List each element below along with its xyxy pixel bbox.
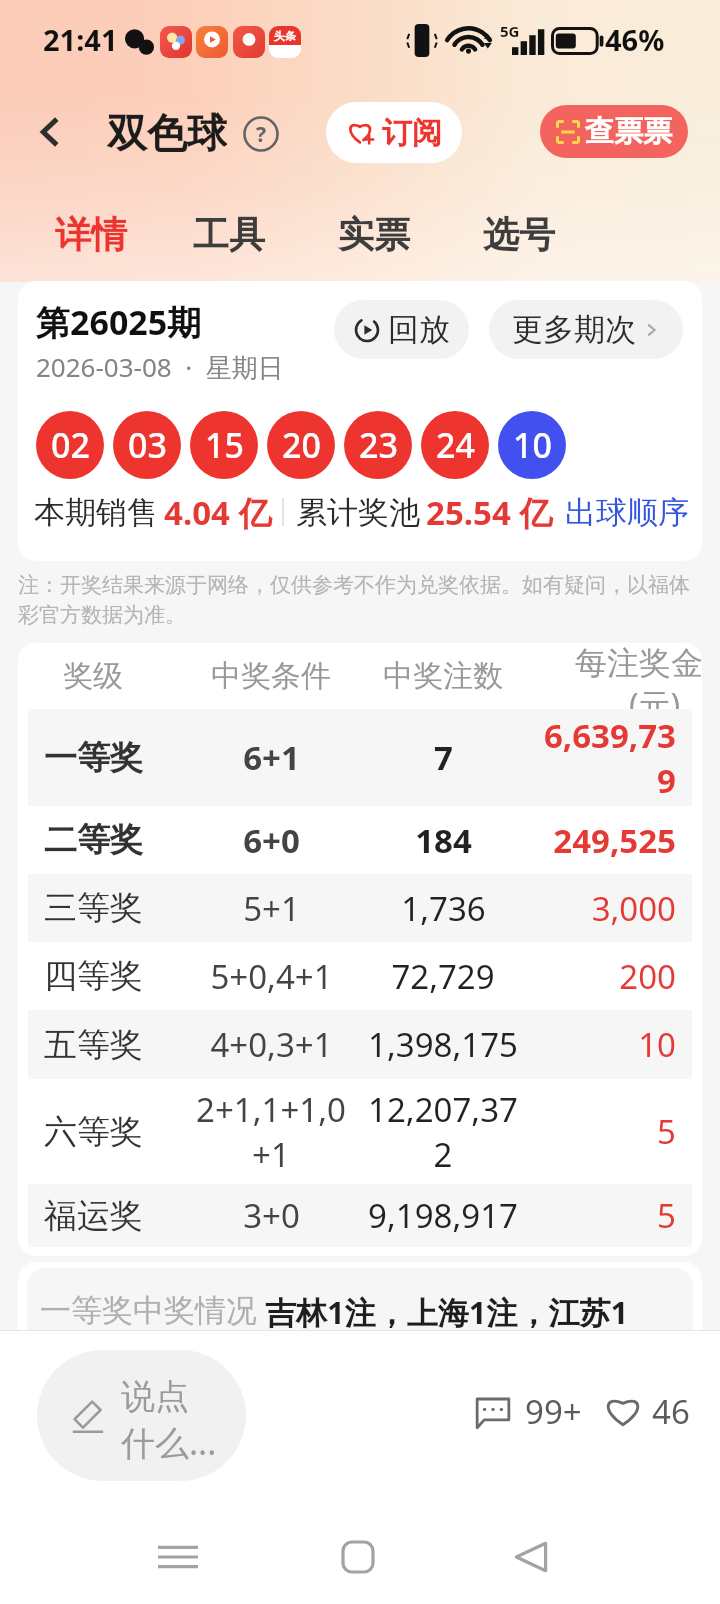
staticText: 一等奖中奖情况 [40, 1291, 257, 1330]
staticText: 99+ [525, 1389, 582, 1434]
staticText: 184 [415, 818, 472, 863]
button[interactable]: 详情 [55, 206, 127, 262]
staticText: 双色球 [107, 108, 227, 156]
staticText: 03 [128, 422, 167, 468]
staticText: 10 [638, 1022, 676, 1067]
staticText: 15 [205, 422, 244, 468]
staticText: 24 [436, 422, 475, 468]
staticText: 奖级 [63, 657, 123, 695]
staticText: ? [256, 120, 267, 149]
button[interactable]: 五等奖 [28, 1010, 692, 1079]
staticText: 一等奖 [44, 737, 143, 779]
staticText: 02 [51, 422, 90, 468]
button[interactable]: 六等奖 [28, 1079, 692, 1184]
staticText: 头条 [274, 29, 296, 43]
button[interactable]: 二等奖 [28, 806, 692, 874]
staticText: 46% [605, 20, 665, 59]
button[interactable]: Back [487, 1512, 577, 1602]
staticText: 中奖注数 [383, 657, 503, 695]
staticText: 3,000 [591, 886, 676, 931]
staticText: 72,729 [391, 954, 495, 999]
staticText: 1,736 [401, 886, 486, 931]
staticText: 第26025期 [36, 299, 202, 345]
staticText: 2+1,1+1,0+1 [190, 1087, 352, 1176]
button[interactable]: 一等奖 [28, 709, 692, 806]
button[interactable]: 回放 [334, 300, 469, 359]
staticText: 工具 [193, 212, 265, 257]
staticText: 12,207,372 [364, 1087, 522, 1176]
staticText: 10 [513, 422, 552, 468]
staticText: 5 [657, 1109, 676, 1154]
button[interactable]: 三等奖 [28, 874, 692, 942]
staticText: 25.54 亿 [426, 490, 553, 535]
staticText: 4+0,3+1 [210, 1022, 333, 1067]
staticText: 23 [359, 422, 398, 468]
staticText: 详情 [55, 212, 127, 257]
button[interactable]: 查票票 [540, 105, 688, 158]
staticText: 9,198,917 [368, 1193, 518, 1238]
staticText: 1,398,175 [368, 1022, 518, 1067]
staticText: 5G [500, 21, 520, 41]
staticText: 订阅 [382, 114, 442, 152]
staticText: 6+0 [243, 818, 300, 863]
staticText: 200 [619, 954, 676, 999]
button[interactable]: Back [26, 108, 74, 156]
staticText: 本期销售 [34, 493, 158, 532]
staticText: 回放 [388, 310, 450, 349]
button[interactable]: Recents [133, 1512, 223, 1602]
staticText: 46 [652, 1389, 690, 1434]
staticText: 5 [657, 1193, 676, 1238]
staticText: 二等奖 [44, 819, 143, 861]
staticText: 5+0,4+1 [210, 954, 333, 999]
staticText: 福运奖 [44, 1195, 143, 1237]
staticText: 四等奖 [44, 955, 143, 997]
staticText: 6,639,739 [532, 713, 676, 802]
button[interactable]: Home [313, 1512, 403, 1602]
staticText: 249,525 [553, 818, 676, 863]
button[interactable]: 实票 [338, 206, 410, 262]
staticText: 注：开奖结果来源于网络，仅供参考不作为兑奖依据。如有疑问，以福体彩官方数据为准。 [18, 572, 694, 629]
staticText: 中奖条件 [211, 657, 331, 695]
button[interactable]: 四等奖 [28, 942, 692, 1010]
staticText: 实票 [338, 212, 410, 257]
staticText: (元) [629, 683, 681, 727]
button[interactable]: 99+ [471, 1386, 582, 1436]
button[interactable]: 更多期次 [489, 300, 683, 359]
button[interactable]: 46 [602, 1386, 690, 1436]
staticText: 五等奖 [44, 1024, 143, 1066]
staticText: 累计奖池 [296, 493, 420, 532]
staticText: 吉林1注，上海1注，江苏1 [265, 1291, 629, 1332]
staticText: 21:41 [43, 20, 118, 59]
staticText: 7 [434, 735, 453, 780]
staticText: 6+1 [243, 735, 300, 780]
button[interactable]: 选号 [483, 206, 555, 262]
staticText: 查票票 [585, 113, 672, 150]
button[interactable]: 福运奖 [28, 1184, 692, 1247]
button[interactable]: 订阅 [326, 102, 462, 163]
staticText: 每注奖金 [575, 643, 702, 683]
staticText: 三等奖 [44, 887, 143, 929]
staticText: 出球顺序 [565, 493, 689, 532]
staticText: 5+1 [243, 886, 300, 931]
staticText: 说点什么... [121, 1375, 221, 1465]
staticText: 选号 [483, 212, 555, 257]
button[interactable]: 一等奖中奖情况 [27, 1268, 693, 1332]
staticText: 4.04 亿 [164, 490, 272, 535]
staticText: 六等奖 [44, 1111, 143, 1153]
button[interactable]: 出球顺序 [565, 493, 689, 532]
staticText: 更多期次 [512, 310, 636, 349]
staticText: 2026-03-08 · 星期日 [36, 349, 284, 385]
button[interactable]: 工具 [193, 206, 265, 262]
staticText: 3+0 [243, 1193, 300, 1238]
button[interactable]: 说点什么... [37, 1350, 246, 1481]
button[interactable]: Help [243, 116, 279, 152]
staticText: 20 [282, 422, 321, 468]
